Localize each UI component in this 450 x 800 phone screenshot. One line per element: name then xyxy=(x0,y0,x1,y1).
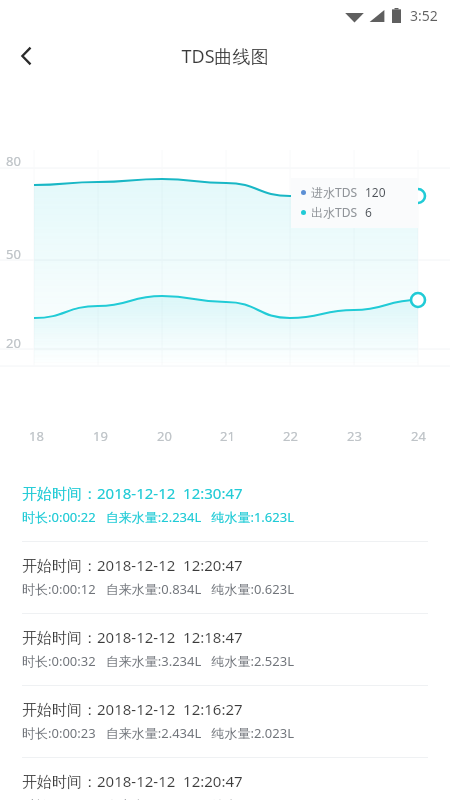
staticText: TDS曲线图 xyxy=(181,44,269,69)
staticText: 24 xyxy=(411,427,426,445)
button[interactable]: 开始时间：2018-12-12 12:16:27 xyxy=(0,686,450,758)
staticText: 50 xyxy=(6,245,21,263)
staticText: 20 xyxy=(157,427,172,445)
button[interactable]: 开始时间：2018-12-12 12:20:47 xyxy=(0,542,450,614)
staticText: 20 xyxy=(6,334,21,352)
staticText: 120 xyxy=(365,184,386,200)
staticText: 80 xyxy=(6,152,21,170)
staticText: 出水TDS xyxy=(311,204,358,220)
button[interactable]: 开始时间：2018-12-12 12:20:47 xyxy=(0,758,450,800)
staticText: 22 xyxy=(283,427,298,445)
staticText: 6 xyxy=(365,204,372,220)
staticText: 23 xyxy=(347,427,362,445)
staticText: 18 xyxy=(29,427,44,445)
staticText: 3:52 xyxy=(410,6,438,25)
staticText: 开始时间：2018-12-12 12:18:47 xyxy=(22,627,243,647)
staticText: 进水TDS xyxy=(311,184,358,200)
staticText: 时长:0:00:12 自来水量:0.834L 纯水量:0.623L xyxy=(22,580,294,598)
staticText: 21 xyxy=(220,427,235,445)
staticText: 开始时间：2018-12-12 12:20:47 xyxy=(22,555,243,575)
button[interactable]: 开始时间：2018-12-12 12:30:47 xyxy=(0,470,450,542)
staticText: 19 xyxy=(93,427,108,445)
staticText: 开始时间：2018-12-12 12:30:47 xyxy=(22,483,243,503)
staticText: 时长:0:00:22 自来水量:2.234L 纯水量:1.623L xyxy=(22,796,294,800)
staticText: 时长:0:00:22 自来水量:2.234L 纯水量:1.623L xyxy=(22,508,294,526)
staticText: 开始时间：2018-12-12 12:20:47 xyxy=(22,771,243,791)
staticText: 开始时间：2018-12-12 12:16:27 xyxy=(22,699,243,719)
staticText: 时长:0:00:23 自来水量:2.434L 纯水量:2.023L xyxy=(22,724,294,742)
button[interactable]: Back xyxy=(0,30,54,82)
staticText: 时长:0:00:32 自来水量:3.234L 纯水量:2.523L xyxy=(22,652,294,670)
button[interactable]: 开始时间：2018-12-12 12:18:47 xyxy=(0,614,450,686)
